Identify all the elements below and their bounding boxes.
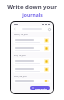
button[interactable]: Mood (13, 79, 51, 83)
button[interactable]: Mood (13, 58, 51, 65)
button[interactable]: Mood (13, 66, 51, 73)
button[interactable]: Mood (44, 38, 49, 43)
button[interactable]: Mood (13, 37, 51, 44)
staticText: Write down your (7, 3, 57, 11)
staticText: THU, 08 JUN (14, 75, 27, 78)
button[interactable]: Back (13, 27, 17, 31)
button[interactable]: Mood (44, 80, 49, 82)
button[interactable]: More options (47, 27, 51, 31)
staticText: journals (22, 12, 43, 19)
button[interactable]: New entry (30, 86, 50, 90)
staticText: New entry (35, 87, 48, 90)
staticText: SAT, 10 JUN (14, 54, 26, 57)
button[interactable]: Mood (44, 67, 49, 72)
button[interactable]: Mood (13, 45, 51, 52)
button[interactable]: Mood (44, 59, 49, 64)
button[interactable]: Mood (44, 46, 49, 51)
staticText: MON, 12 JUN (14, 33, 28, 36)
